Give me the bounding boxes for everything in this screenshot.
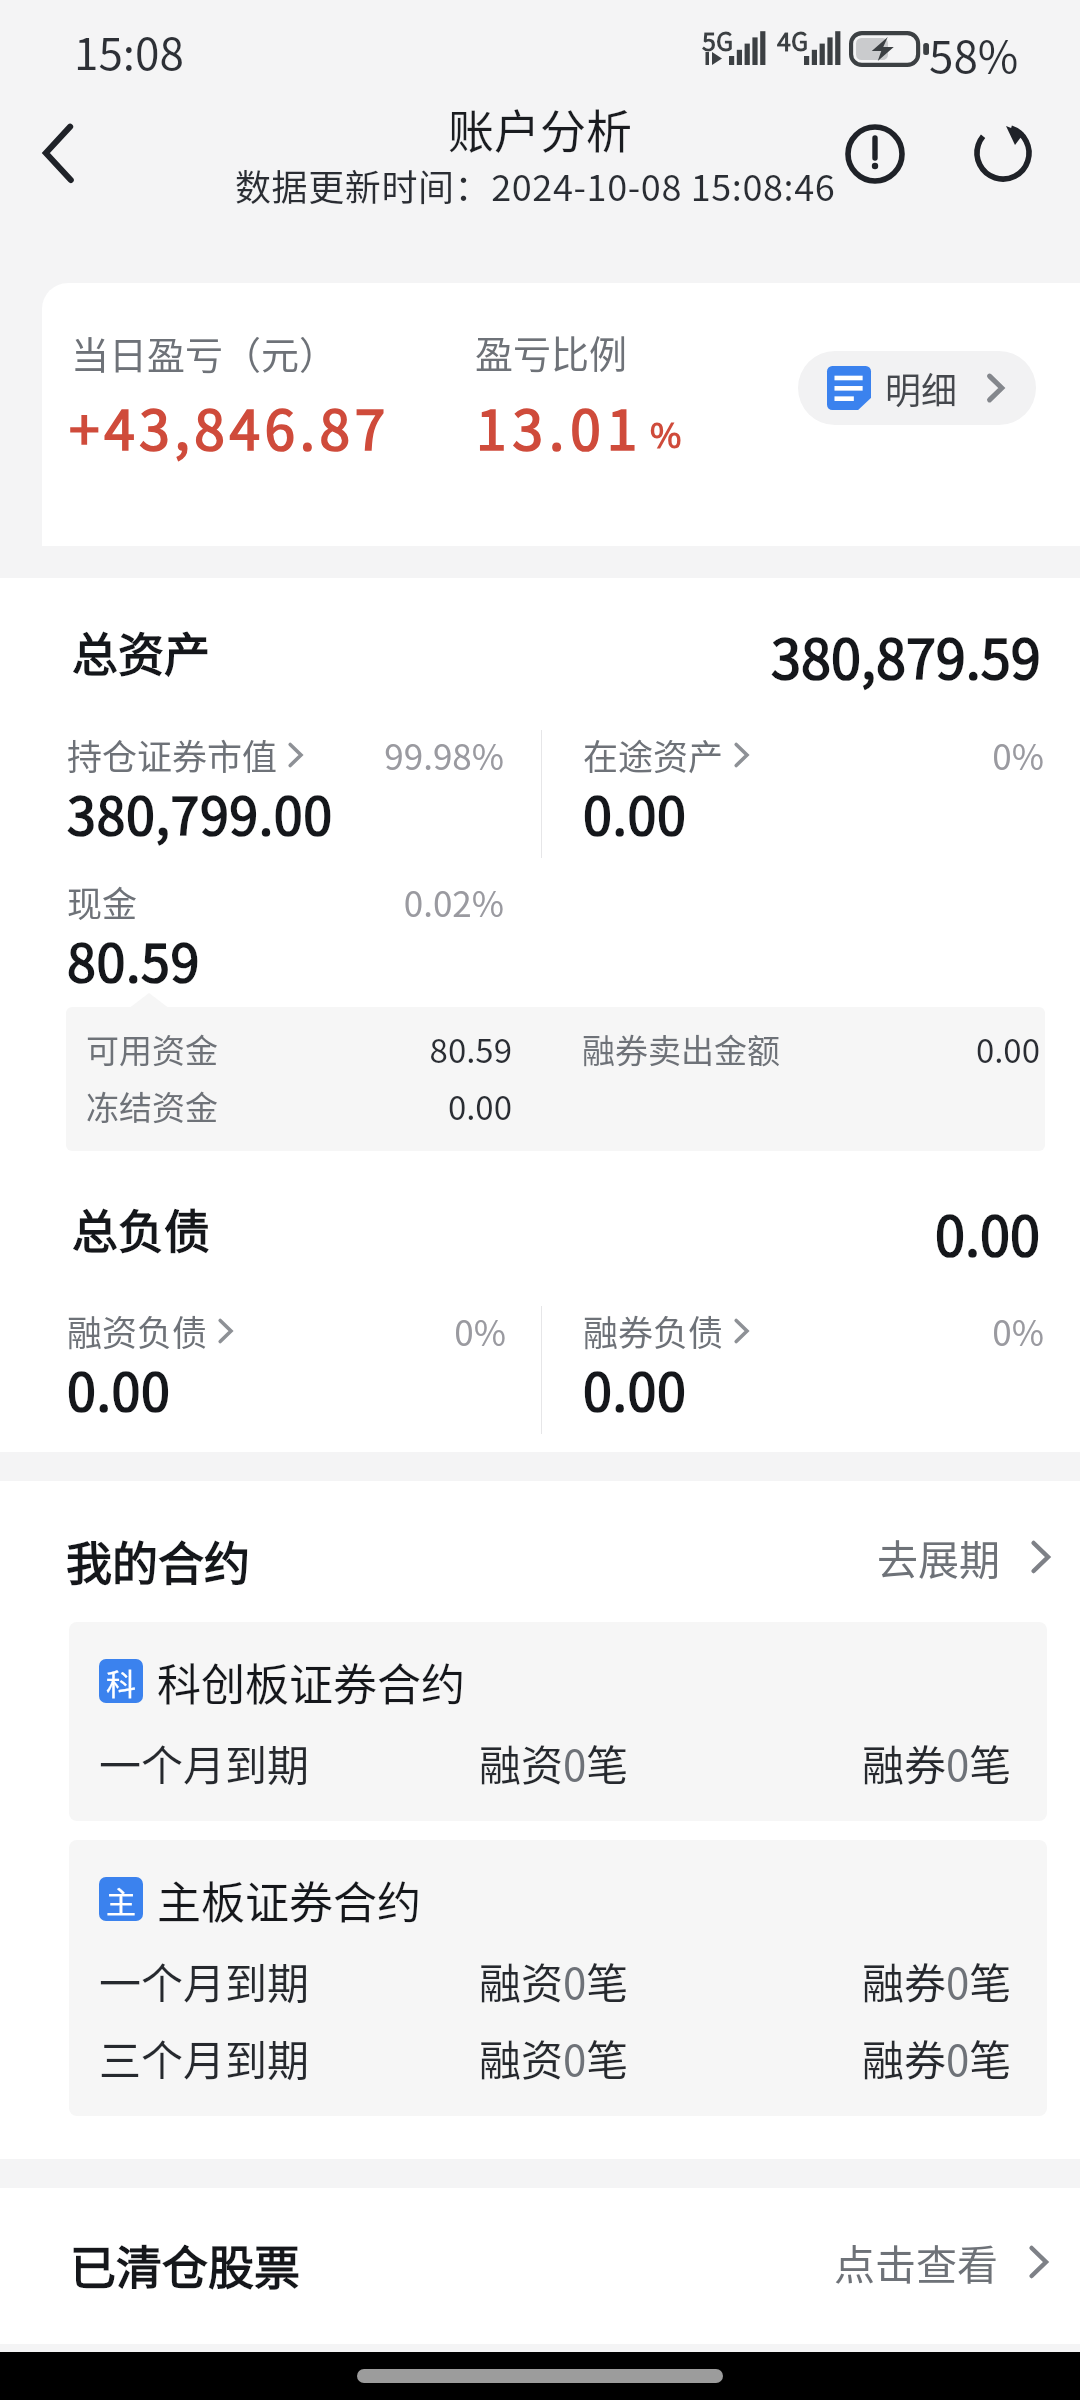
staticText: 我的合约 <box>66 1527 250 1594</box>
staticText: 融券0笔 <box>862 1732 1012 1793</box>
button[interactable]: 在途资产 <box>583 729 756 780</box>
staticText: 在途资产 <box>583 729 724 780</box>
staticText: 已清仓股票 <box>70 2231 300 2298</box>
staticText: 融券卖出金额 <box>582 1025 780 1073</box>
staticText: 0.00 <box>583 1351 687 1426</box>
staticText: 一个月到期 <box>99 1950 310 2011</box>
staticText: 融券0笔 <box>862 2027 1012 2088</box>
staticText: 13.01 <box>476 386 644 466</box>
button[interactable]: 明细 <box>798 351 1036 425</box>
staticText: 主板证券合约 <box>157 1868 421 1932</box>
staticText: 可用资金 <box>86 1025 218 1073</box>
staticText: 融资0笔 <box>479 1732 629 1793</box>
staticText: 80.59 <box>326 1025 512 1073</box>
staticText: 数据更新时间：2024-10-08 15:08:46 <box>235 159 836 211</box>
staticText: 融资负债 <box>67 1305 208 1356</box>
staticText: 当日盈亏（元） <box>71 325 338 380</box>
staticText: 融资0笔 <box>479 2027 629 2088</box>
staticText: 380,879.59 <box>771 616 1041 694</box>
staticText: 一个月到期 <box>99 1732 310 1793</box>
staticText: 0.00 <box>846 1025 1040 1073</box>
button[interactable]: 去展期 <box>877 1527 1060 1586</box>
staticText: 4G <box>777 22 809 56</box>
button[interactable]: Risk warning <box>827 116 923 212</box>
staticText: 三个月到期 <box>99 2027 310 2088</box>
staticText: 总负债 <box>72 1195 210 1262</box>
button[interactable]: 科 <box>69 1622 1047 1821</box>
button[interactable]: 融资负债 <box>67 1305 240 1356</box>
staticText: 盈亏比例 <box>475 324 628 379</box>
button[interactable]: 主 <box>69 1840 1047 2116</box>
staticText: 0.02% <box>244 876 504 927</box>
staticText: 明细 <box>885 362 958 414</box>
staticText: 15:08 <box>74 19 184 83</box>
staticText: 持仓证券市值 <box>67 729 278 780</box>
staticText: 0.00 <box>67 1351 171 1426</box>
staticText: 58% <box>929 22 1019 86</box>
staticText: 冻结资金 <box>86 1082 218 1130</box>
button[interactable]: Refresh <box>955 115 1051 211</box>
staticText: 99.98% <box>244 729 504 780</box>
staticText: 科创板证券合约 <box>157 1650 465 1714</box>
staticText: 0.00 <box>935 1193 1040 1271</box>
staticText: 账户分析 <box>448 95 632 162</box>
staticText: 380,799.00 <box>67 775 333 850</box>
button[interactable]: 融券负债 <box>583 1305 756 1356</box>
staticText: +43,846.87 <box>69 386 390 466</box>
staticText: 点击查看 <box>834 2232 998 2291</box>
staticText: 0% <box>784 729 1044 780</box>
staticText: 去展期 <box>877 1527 1000 1586</box>
staticText: 0% <box>246 1305 506 1356</box>
staticText: 总资产 <box>72 618 210 685</box>
staticText: 融资0笔 <box>479 1950 629 2011</box>
staticText: 主 <box>106 1878 136 1921</box>
staticText: 融券负债 <box>583 1305 724 1356</box>
staticText: 科 <box>106 1660 136 1703</box>
button[interactable]: Back <box>12 105 104 197</box>
staticText: 0.00 <box>326 1082 512 1130</box>
staticText: 5G <box>702 22 734 56</box>
staticText: % <box>650 409 682 458</box>
staticText: 融券0笔 <box>862 1950 1012 2011</box>
staticText: 80.59 <box>67 922 200 997</box>
staticText: 0% <box>784 1305 1044 1356</box>
staticText: 0.00 <box>583 775 687 850</box>
button[interactable]: 持仓证券市值 <box>67 729 310 780</box>
button[interactable]: 已清仓股票 <box>0 2188 1080 2344</box>
staticText: 现金 <box>67 876 138 927</box>
button[interactable]: 现金 <box>67 876 138 927</box>
